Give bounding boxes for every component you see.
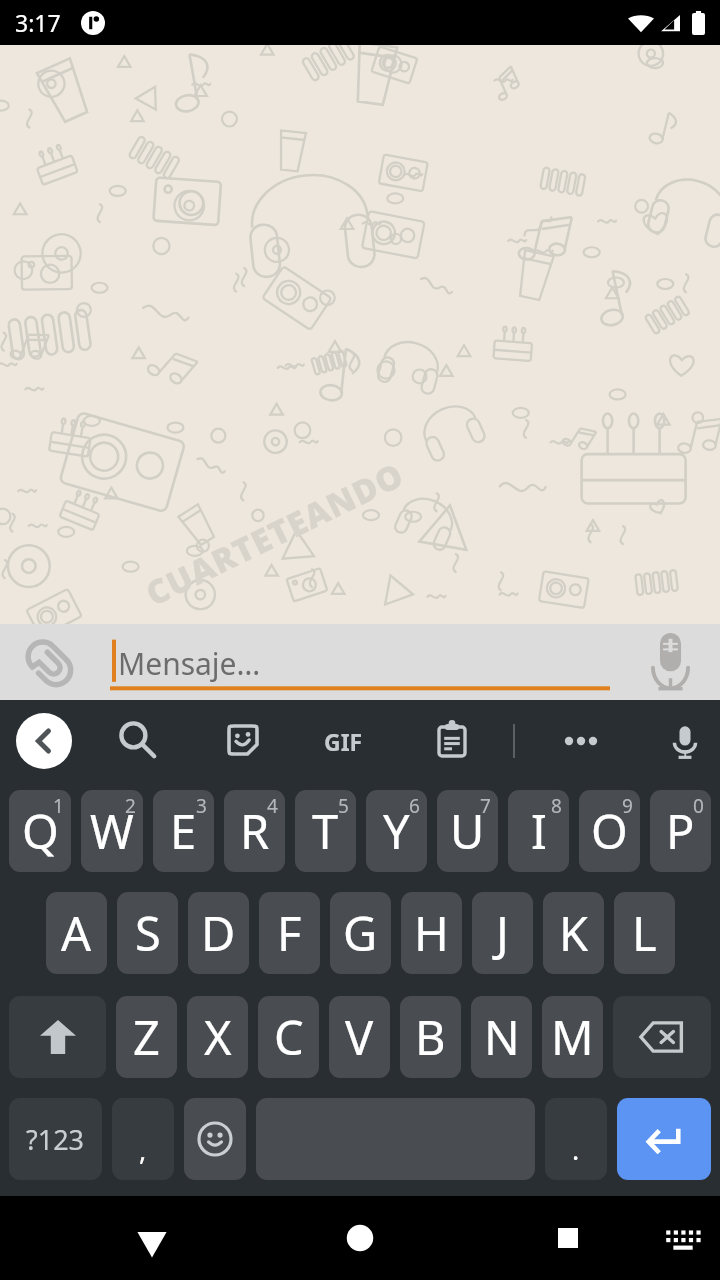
- staticText: N: [484, 1005, 520, 1069]
- button[interactable]: F: [259, 892, 320, 974]
- staticText: R: [240, 799, 270, 863]
- button[interactable]: J: [472, 892, 533, 974]
- button[interactable]: V: [329, 996, 390, 1078]
- staticText: X: [204, 1005, 232, 1069]
- button[interactable]: T: [295, 790, 356, 872]
- button[interactable]: G: [330, 892, 391, 974]
- button[interactable]: Shift: [9, 996, 106, 1078]
- staticText: A: [61, 901, 92, 965]
- staticText: 3:17: [15, 7, 61, 38]
- button[interactable]: Enter: [617, 1098, 711, 1180]
- button[interactable]: E: [153, 790, 214, 872]
- button[interactable]: Back: [125, 1211, 179, 1265]
- button[interactable]: S: [117, 892, 178, 974]
- button[interactable]: Stickers: [218, 716, 268, 766]
- button[interactable]: Home: [333, 1211, 387, 1265]
- staticText: C: [274, 1005, 304, 1069]
- staticText: Y: [383, 799, 410, 863]
- button[interactable]: GIF: [324, 726, 363, 757]
- staticText: W: [90, 799, 134, 863]
- button[interactable]: Voice message: [651, 633, 690, 691]
- button[interactable]: L: [614, 892, 675, 974]
- staticText: F: [277, 901, 302, 965]
- staticText: S: [135, 901, 161, 965]
- button[interactable]: R: [224, 790, 285, 872]
- button[interactable]: Recent apps: [541, 1211, 595, 1265]
- staticText: 0: [693, 793, 704, 819]
- staticText: 9: [622, 793, 633, 819]
- button[interactable]: N: [471, 996, 532, 1078]
- staticText: V: [345, 1005, 374, 1069]
- staticText: 1: [53, 793, 64, 819]
- button[interactable]: Y: [366, 790, 427, 872]
- staticText: M: [551, 1005, 594, 1069]
- staticText: 2: [125, 793, 136, 819]
- staticText: CUARTETEANDO: [138, 452, 411, 616]
- button[interactable]: D: [188, 892, 249, 974]
- button[interactable]: M: [542, 996, 603, 1078]
- button[interactable]: Search: [119, 721, 159, 761]
- staticText: K: [559, 901, 589, 965]
- button[interactable]: Backspace: [613, 996, 711, 1078]
- staticText: D: [201, 901, 236, 965]
- button[interactable]: Emoji: [184, 1098, 246, 1180]
- button[interactable]: P: [650, 790, 711, 872]
- button[interactable]: C: [258, 996, 319, 1078]
- staticText: 8: [551, 793, 562, 819]
- button[interactable]: K: [543, 892, 604, 974]
- staticText: 3: [196, 793, 207, 819]
- staticText: ?123: [26, 1121, 85, 1158]
- staticText: Z: [133, 1005, 160, 1069]
- button[interactable]: Attach file: [22, 636, 74, 688]
- button[interactable]: U: [437, 790, 498, 872]
- staticText: H: [414, 901, 449, 965]
- staticText: I: [531, 799, 547, 863]
- staticText: L: [632, 901, 657, 965]
- button[interactable]: Clipboard: [427, 716, 477, 766]
- staticText: T: [312, 799, 339, 863]
- button[interactable]: W: [81, 790, 143, 872]
- button[interactable]: Mensaje…: [110, 624, 610, 700]
- button[interactable]: O: [579, 790, 640, 872]
- button[interactable]: Q: [9, 790, 71, 872]
- staticText: G: [343, 901, 378, 965]
- button[interactable]: B: [400, 996, 461, 1078]
- staticText: O: [591, 799, 628, 863]
- staticText: U: [450, 799, 485, 863]
- button[interactable]: ?123: [9, 1098, 102, 1180]
- button[interactable]: I: [508, 790, 569, 872]
- button[interactable]: X: [187, 996, 248, 1078]
- button[interactable]: Switch keyboard: [662, 1217, 704, 1259]
- staticText: 6: [409, 793, 420, 819]
- staticText: E: [170, 799, 197, 863]
- staticText: B: [415, 1005, 446, 1069]
- button[interactable]: ,: [112, 1098, 174, 1180]
- staticText: ,: [139, 1131, 147, 1168]
- staticText: Q: [22, 799, 59, 863]
- staticText: 5: [338, 793, 349, 819]
- button[interactable]: Z: [116, 996, 177, 1078]
- button[interactable]: A: [46, 892, 107, 974]
- staticText: 7: [480, 793, 491, 819]
- button[interactable]: H: [401, 892, 462, 974]
- button[interactable]: More options: [556, 716, 606, 766]
- staticText: Mensaje…: [118, 643, 261, 684]
- button[interactable]: Back: [16, 713, 72, 769]
- staticText: P: [666, 799, 695, 863]
- button[interactable]: Voice input: [662, 718, 708, 764]
- staticText: 4: [267, 793, 278, 819]
- staticText: J: [496, 901, 509, 965]
- staticText: .: [572, 1131, 580, 1168]
- button[interactable]: .: [545, 1098, 607, 1180]
